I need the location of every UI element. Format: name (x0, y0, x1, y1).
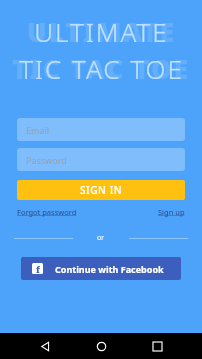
button[interactable]: SIGN IN (17, 180, 185, 200)
staticText: TIC TAC TOE (12, 51, 190, 86)
staticText: Continue with Facebook (55, 263, 164, 275)
staticText: ULTIMATE (34, 14, 169, 49)
staticText: ULTIMATE (27, 14, 176, 49)
staticText: Email (26, 124, 50, 136)
staticText: Password (26, 154, 67, 166)
staticText: TIC TAC TOE (19, 51, 184, 86)
button[interactable]: f (21, 257, 181, 280)
staticText: Forgot password (17, 207, 77, 217)
staticText: SIGN IN (80, 183, 123, 197)
button[interactable]: Sign up (158, 207, 185, 217)
button[interactable]: Back (34, 335, 56, 357)
button[interactable]: Home (90, 335, 112, 357)
button[interactable]: Recent apps (146, 335, 168, 357)
button[interactable]: Password (17, 148, 185, 171)
button[interactable]: Forgot password (17, 207, 77, 217)
staticText: or (97, 233, 105, 243)
staticText: f (36, 263, 40, 274)
button[interactable]: Email (17, 118, 185, 141)
staticText: Sign up (158, 207, 185, 217)
